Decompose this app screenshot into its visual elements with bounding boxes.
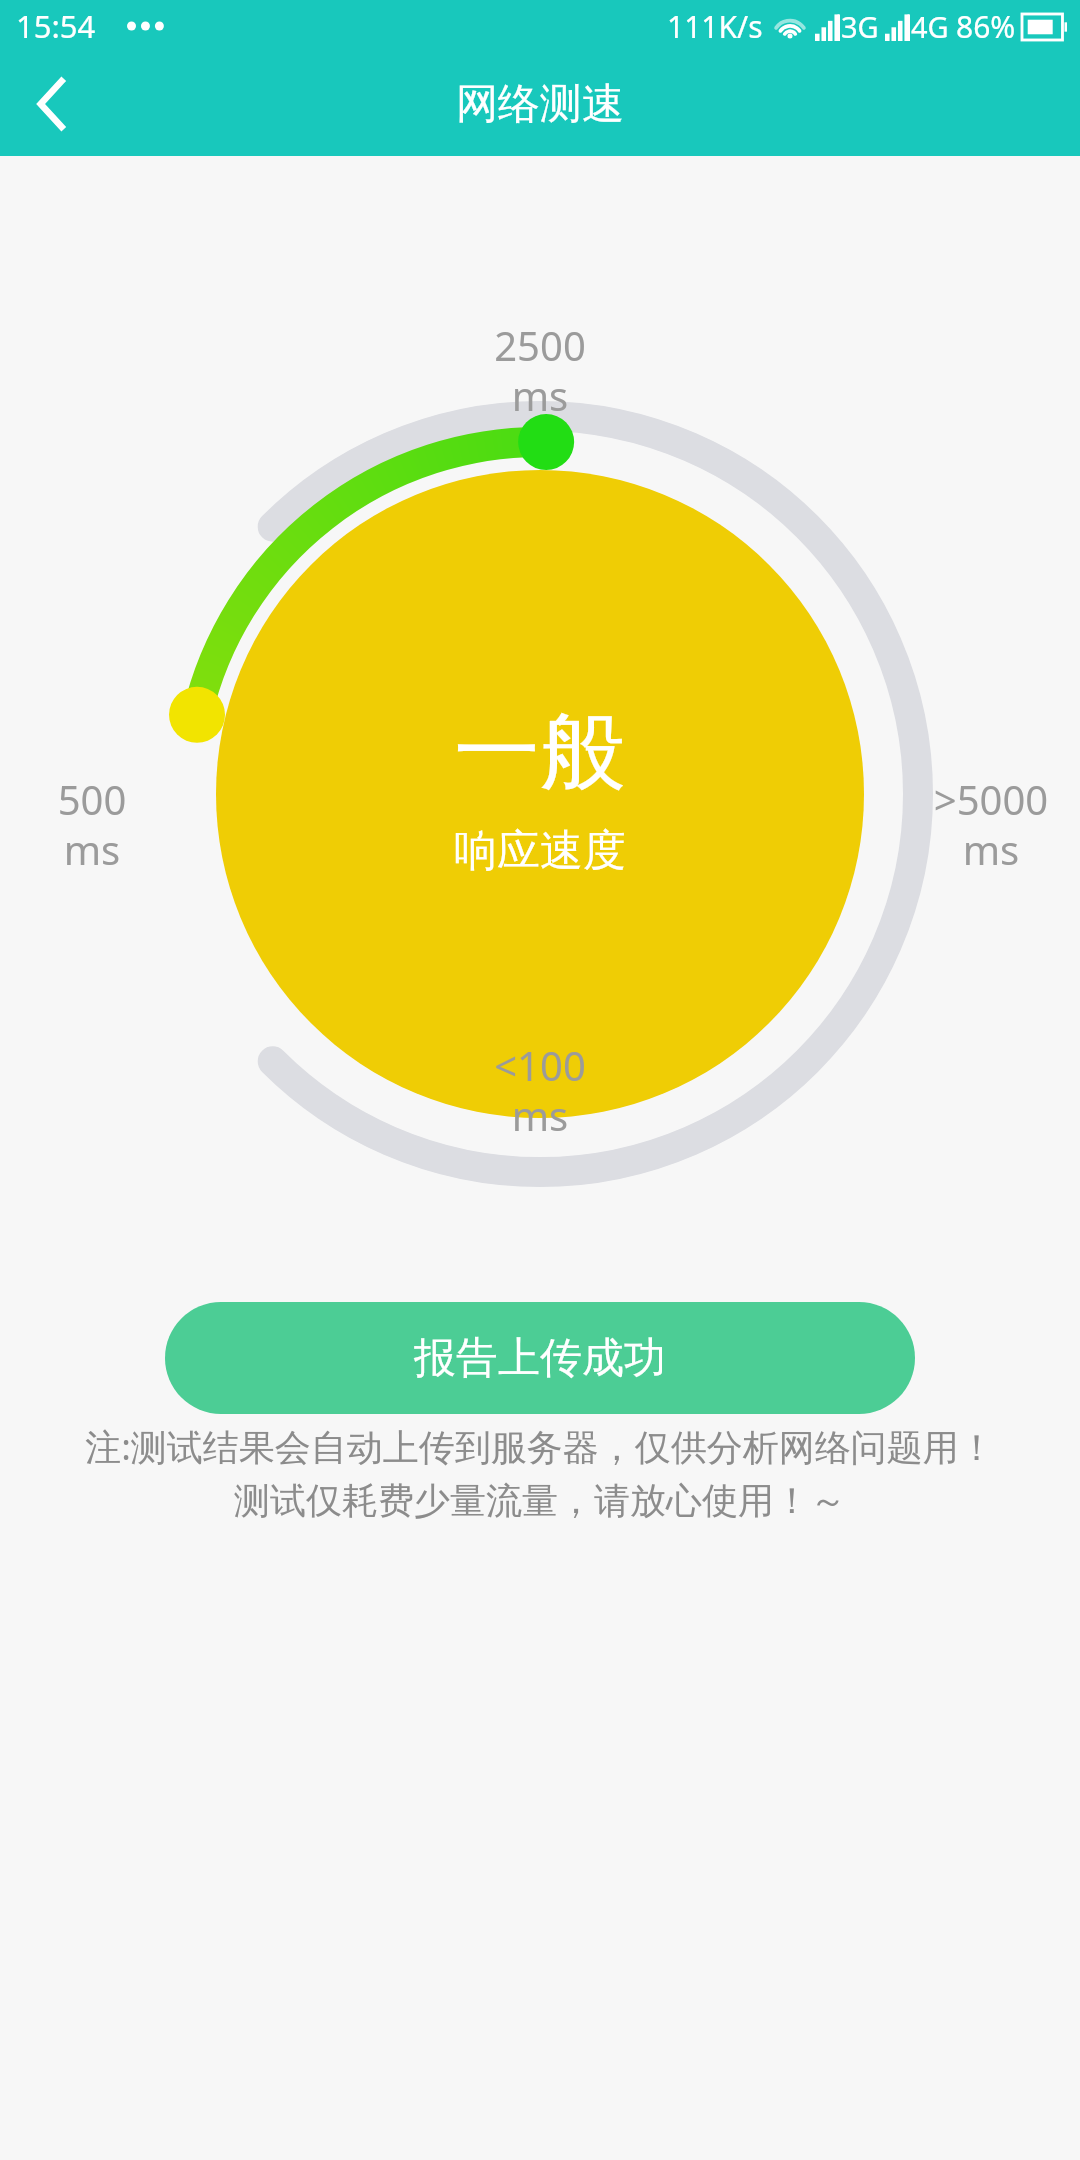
staticText: 响应速度 xyxy=(454,824,626,878)
staticText: 500 ms xyxy=(12,772,172,877)
staticText: 一般 xyxy=(454,698,626,806)
staticText: 15:54 xyxy=(16,5,96,47)
staticText: 4G xyxy=(911,7,949,46)
staticText: >5000 ms xyxy=(906,772,1076,877)
staticText: 86% xyxy=(956,6,1016,47)
staticText: <100 ms xyxy=(410,1038,670,1143)
staticText: 网络测速 xyxy=(456,78,624,131)
staticText: 报告上传成功 xyxy=(414,1332,666,1385)
staticText: 注:测试结果会自动上传到服务器，仅供分析网络问题用！ 测试仅耗费少量流量，请放心… xyxy=(34,1422,1046,1524)
button[interactable]: 报告上传成功 xyxy=(165,1302,915,1414)
button[interactable]: Back xyxy=(0,52,104,156)
staticText: 3G xyxy=(841,7,879,46)
staticText: 111K/s xyxy=(667,6,763,47)
staticText: 2500 ms xyxy=(410,318,670,423)
